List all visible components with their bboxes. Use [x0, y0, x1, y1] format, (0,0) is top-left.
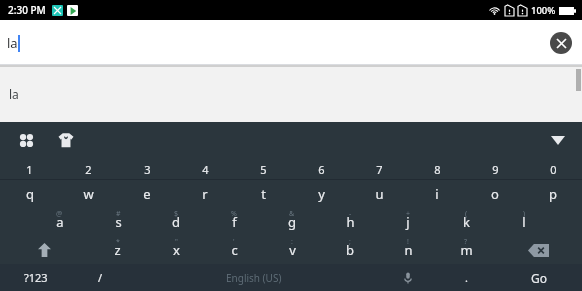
staticText: s [115, 213, 122, 231]
staticText: 1 [26, 162, 33, 177]
staticText: - [349, 209, 352, 219]
staticText: 9 [492, 162, 499, 177]
staticText: ! [407, 237, 409, 247]
button[interactable]: ' [205, 236, 263, 264]
staticText: 0 [550, 162, 557, 177]
staticText: b [346, 241, 354, 259]
staticText: r [202, 185, 208, 203]
button[interactable]: @ [30, 208, 89, 236]
staticText: j [406, 213, 410, 231]
button[interactable]: % [205, 208, 263, 236]
staticText: 8 [434, 162, 441, 177]
button[interactable]: - [321, 208, 379, 236]
button[interactable]: Voice input [379, 264, 437, 291]
button[interactable]: Go [495, 264, 582, 291]
button[interactable]: w [59, 180, 118, 208]
staticText: f [232, 213, 237, 231]
staticText: c [231, 241, 238, 259]
staticText: ? [464, 237, 468, 247]
staticText: 2 [85, 162, 92, 177]
staticText: m [460, 241, 473, 259]
button[interactable]: ? [437, 236, 495, 264]
button[interactable]: r [176, 180, 234, 208]
staticText: 3 [144, 162, 151, 177]
button[interactable]: ! [379, 236, 437, 264]
staticText: " [175, 237, 178, 247]
button[interactable]: 7 [350, 158, 408, 180]
button[interactable]: 8 [408, 158, 466, 180]
button[interactable]: 1 [0, 158, 59, 180]
staticText: ) [523, 209, 526, 219]
staticText: 6 [318, 162, 325, 177]
button[interactable]: q [0, 180, 59, 208]
staticText: . [465, 270, 468, 285]
button[interactable]: 5 [234, 158, 292, 180]
button[interactable]: p [524, 180, 582, 208]
button[interactable]: u [350, 180, 408, 208]
button[interactable]: . [437, 264, 495, 291]
button[interactable]: Space [129, 264, 379, 291]
staticText: / [98, 270, 103, 285]
staticText: ( [465, 209, 468, 219]
button[interactable]: t [234, 180, 292, 208]
button[interactable]: & [263, 208, 321, 236]
staticText: Go [531, 270, 547, 286]
button[interactable]: Stickers [52, 126, 80, 154]
button[interactable]: + [379, 208, 437, 236]
staticText: u [375, 185, 384, 203]
staticText: x [173, 241, 180, 259]
staticText: % [231, 209, 237, 219]
button[interactable]: Clear text [550, 32, 572, 54]
button[interactable]: Backspace [495, 236, 582, 264]
button[interactable]: Shift [0, 236, 88, 264]
staticText: & [289, 209, 295, 219]
button[interactable]: ?123 [0, 264, 71, 291]
button[interactable]: Hide keyboard [544, 126, 572, 154]
button[interactable]: : [263, 236, 321, 264]
staticText: 5 [260, 162, 267, 177]
button[interactable]: o [466, 180, 524, 208]
staticText: # [116, 209, 121, 219]
staticText: ; [349, 237, 351, 247]
button[interactable]: 4 [176, 158, 234, 180]
staticText: English (US) [226, 271, 282, 285]
staticText: q [26, 185, 34, 203]
button[interactable]: " [147, 236, 205, 264]
staticText: y [318, 185, 325, 203]
staticText: n [404, 241, 413, 259]
button[interactable]: y [292, 180, 350, 208]
staticText: z [114, 241, 121, 259]
staticText: v [289, 241, 296, 259]
staticText: ?123 [24, 270, 48, 285]
staticText: g [288, 213, 296, 231]
staticText: w [83, 185, 94, 203]
button[interactable]: e [118, 180, 176, 208]
button[interactable]: * [88, 236, 147, 264]
button[interactable]: la [0, 65, 582, 122]
staticText: la [9, 86, 19, 102]
staticText: i [435, 185, 439, 203]
button[interactable]: i [408, 180, 466, 208]
staticText: * [116, 237, 120, 247]
button[interactable]: ( [437, 208, 495, 236]
button[interactable]: 0 [524, 158, 582, 180]
staticText: la [7, 34, 18, 52]
staticText: h [346, 213, 355, 231]
staticText: @ [56, 209, 63, 219]
staticText: : [291, 237, 293, 247]
button[interactable]: ) [495, 208, 553, 236]
staticText: ' [233, 237, 235, 247]
button[interactable]: 3 [118, 158, 176, 180]
button[interactable]: 2 [59, 158, 118, 180]
staticText: $ [174, 209, 179, 219]
button[interactable]: 6 [292, 158, 350, 180]
button[interactable]: $ [147, 208, 205, 236]
button[interactable]: 9 [466, 158, 524, 180]
button[interactable]: Google apps [12, 126, 40, 154]
staticText: k [463, 213, 470, 231]
button[interactable]: / [71, 264, 129, 291]
button[interactable]: ; [321, 236, 379, 264]
staticText: o [491, 185, 499, 203]
button[interactable]: # [89, 208, 147, 236]
staticText: p [549, 185, 557, 203]
